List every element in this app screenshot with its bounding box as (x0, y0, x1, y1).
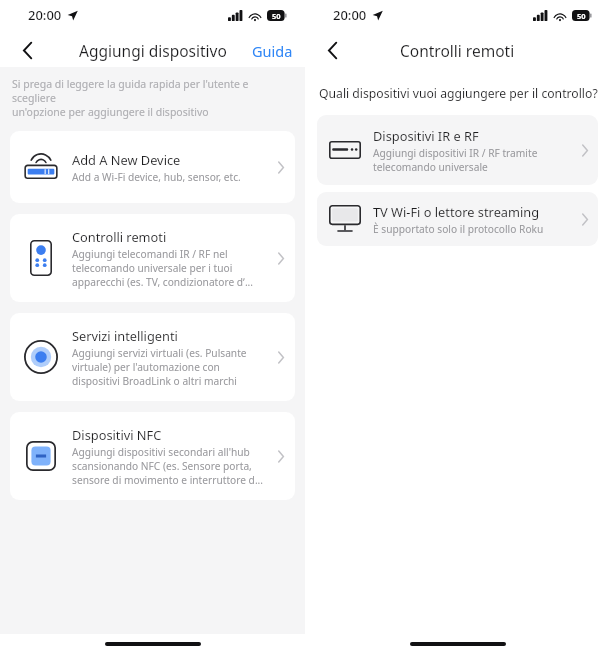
staticText: 20:00 (333, 6, 367, 24)
button[interactable]: Servizi intelligenti (10, 313, 295, 401)
staticText: Controlli remoti (400, 40, 515, 61)
staticText: TV Wi-Fi o lettore streaming (373, 203, 540, 220)
staticText: Aggiungi servizi virtuali (es. Pulsante (72, 346, 247, 360)
staticText: Guida (252, 41, 293, 61)
staticText: Add a Wi-Fi device, hub, sensor, etc. (72, 170, 241, 184)
staticText: 50 (577, 11, 586, 21)
staticText: telecomando universale (373, 160, 488, 174)
staticText: Dispositivi IR e RF (373, 127, 479, 144)
staticText: Si prega di leggere la guida rapida per … (12, 77, 293, 119)
staticText: Servizi intelligenti (72, 327, 178, 344)
staticText: Quali dispositivi vuoi aggiungere per il… (319, 85, 598, 102)
button[interactable]: TV Wi-Fi o lettore streaming (317, 192, 598, 246)
staticText: Aggiungi dispositivo (79, 40, 227, 61)
staticText: Controlli remoti (72, 228, 167, 245)
staticText: scansionando NFC (es. Sensore porta, (72, 459, 252, 473)
staticText: telecomando universale per i tuoi (72, 261, 233, 275)
staticText: Aggiungi dispositivi IR / RF tramite (373, 146, 538, 160)
staticText: Aggiungi telecomandi IR / RF nel (72, 247, 228, 261)
button[interactable]: Guida (252, 41, 293, 61)
staticText: È supportato solo il protocollo Roku (373, 222, 544, 236)
button[interactable]: Controlli remoti (10, 214, 295, 302)
staticText: dispositivi BroadLink o altri marchi (72, 374, 237, 388)
button[interactable]: Back (315, 34, 349, 67)
staticText: Aggiungi dispositivi secondari all'hub (72, 445, 250, 459)
staticText: 50 (272, 11, 281, 21)
button[interactable]: Add A New Device (10, 131, 295, 203)
staticText: Add A New Device (72, 151, 181, 168)
staticText: apparecchi (es. TV, condizionatore dʼ... (72, 275, 254, 289)
staticText: 20:00 (28, 6, 62, 24)
button[interactable]: Back (10, 34, 44, 67)
button[interactable]: Dispositivi IR e RF (317, 115, 598, 185)
staticText: Dispositivi NFC (72, 426, 162, 443)
staticText: sensore di movimento e interruttore d... (72, 473, 264, 487)
button[interactable]: Dispositivi NFC (10, 412, 295, 500)
staticText: virtuale) per l'automazione con (72, 360, 220, 374)
